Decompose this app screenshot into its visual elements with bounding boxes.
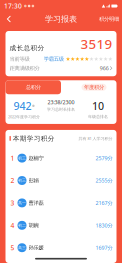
staticText: 5 <box>10 243 14 252</box>
staticText: 总积分 <box>26 84 41 91</box>
staticText: 学习报表 <box>45 14 77 24</box>
button[interactable]: 4 <box>5 214 116 236</box>
staticText: 本期学习积分 <box>13 134 55 142</box>
staticText: 2167分 <box>95 199 112 206</box>
staticText: 共有 81 人学习积分 <box>78 136 112 141</box>
staticText: 高一 <box>18 200 26 205</box>
staticText: 曹洋磊 <box>28 200 43 206</box>
button[interactable]: 5 <box>5 236 116 259</box>
button[interactable]: 3 <box>5 192 116 214</box>
staticText: 10 <box>92 99 104 113</box>
staticText: 学霸五级 <box>44 56 64 62</box>
staticText: 1 <box>10 154 14 163</box>
button[interactable]: 2 <box>5 169 116 192</box>
staticText: 2579分 <box>95 155 112 162</box>
staticText: 966 <box>100 65 109 72</box>
staticText: 当前等级 <box>9 56 29 62</box>
staticText: 学习总时长排名 <box>47 107 75 112</box>
staticText: 942 <box>13 99 31 113</box>
staticText: 初三 <box>18 178 26 183</box>
button[interactable]: 年度积分 <box>81 84 106 91</box>
staticText: 孙乐媛 <box>28 244 43 251</box>
staticText: 距离满级积分 <box>9 65 39 71</box>
staticText: 3 <box>10 198 14 207</box>
staticText: 3519 <box>80 35 112 53</box>
button[interactable]: 返回 <box>3 12 15 26</box>
staticText: 初三 <box>18 156 26 161</box>
staticText: 23:38/2300 <box>47 99 74 106</box>
staticText: 2555分 <box>95 177 112 184</box>
staticText: 2 <box>10 176 14 185</box>
staticText: 成长总积分 <box>9 44 44 52</box>
staticText: 1697分 <box>95 244 112 251</box>
staticText: 年级总排名 <box>88 114 108 119</box>
staticText: 赵楠宁 <box>28 155 43 161</box>
button[interactable]: 966 <box>100 65 112 72</box>
staticText: 4 <box>10 221 14 230</box>
staticText: 彭娟 <box>28 177 38 184</box>
staticText: 初二 <box>18 223 26 228</box>
staticText: 积分明细 <box>99 16 119 22</box>
staticText: 年度积分 <box>84 84 104 91</box>
staticText: 胡婉 <box>28 222 38 229</box>
staticText: 2022年度学习积分 <box>8 114 40 119</box>
staticText: 17:30 <box>4 2 22 10</box>
button[interactable]: 积分明细 <box>99 12 119 26</box>
button[interactable]: 总积分 <box>5 80 61 94</box>
button[interactable]: 1 <box>5 147 116 169</box>
staticText: 1830分 <box>95 222 112 229</box>
staticText: 高三 <box>18 245 26 250</box>
